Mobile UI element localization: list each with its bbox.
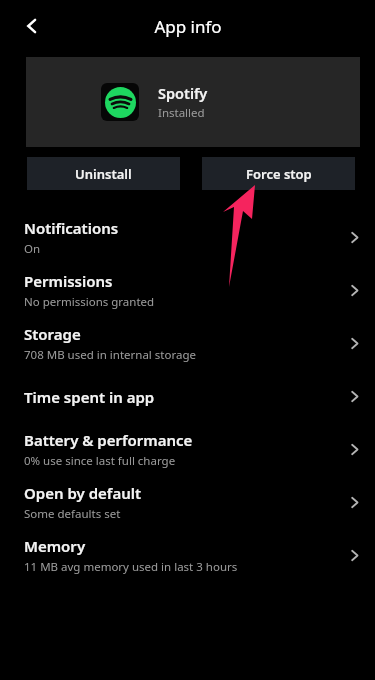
staticText: Open by default (24, 483, 142, 503)
staticText: App info (154, 15, 222, 38)
staticText: Spotify (158, 83, 208, 103)
staticText: Storage (24, 324, 81, 344)
button[interactable]: Back (20, 14, 44, 38)
staticText: Time spent in app (24, 387, 155, 407)
staticText: Permissions (24, 271, 113, 291)
staticText: Battery & performance (24, 430, 193, 450)
staticText: No permissions granted (24, 294, 155, 310)
button[interactable]: Storage (0, 317, 375, 370)
staticText: Notifications (24, 218, 119, 238)
staticText: 11 MB avg memory used in last 3 hours (24, 559, 238, 575)
staticText: Some defaults set (24, 506, 121, 522)
button[interactable]: Uninstall (27, 157, 180, 190)
button[interactable]: Battery & performance (0, 423, 375, 476)
staticText: Memory (24, 536, 86, 556)
staticText: Force stop (246, 165, 312, 183)
staticText: Uninstall (75, 165, 132, 183)
button[interactable]: Memory (0, 529, 375, 582)
button[interactable]: Open by default (0, 476, 375, 529)
button[interactable]: Notifications (0, 211, 375, 264)
staticText: 0% use since last full charge (24, 453, 176, 469)
staticText: On (24, 241, 41, 257)
button[interactable]: Time spent in app (0, 370, 375, 423)
button[interactable]: Force stop (202, 157, 355, 190)
staticText: Installed (158, 105, 205, 121)
button[interactable]: Spotify (26, 57, 360, 147)
button[interactable]: Permissions (0, 264, 375, 317)
staticText: 708 MB used in internal storage (24, 347, 196, 363)
